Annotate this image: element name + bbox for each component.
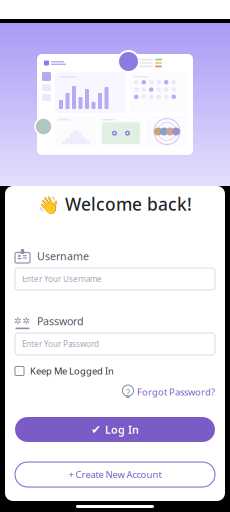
button[interactable]: Keep Me Logged In	[15, 355, 215, 378]
staticText: Keep Me Logged In	[30, 365, 114, 377]
staticText: 👋 Welcome back!	[38, 192, 192, 215]
staticText: Username	[37, 249, 89, 263]
staticText: ?	[126, 387, 130, 399]
button[interactable]: ✔	[15, 417, 215, 442]
staticText: ✲	[14, 316, 22, 326]
button[interactable]: Enter Your Password	[15, 333, 215, 355]
staticText: + Create New Account	[68, 468, 161, 481]
staticText: Forgot Password?	[137, 386, 215, 398]
staticText: ✔	[91, 423, 101, 436]
button[interactable]: Enter Your Username	[15, 268, 215, 290]
staticText: Enter Your Username	[22, 274, 102, 284]
staticText: ✲	[22, 316, 30, 326]
staticText: Password	[37, 314, 84, 328]
staticText: Enter Your Password	[22, 339, 99, 349]
button[interactable]: ?	[15, 378, 215, 399]
staticText: Log In	[105, 422, 139, 437]
button[interactable]: + Create New Account	[15, 462, 215, 487]
